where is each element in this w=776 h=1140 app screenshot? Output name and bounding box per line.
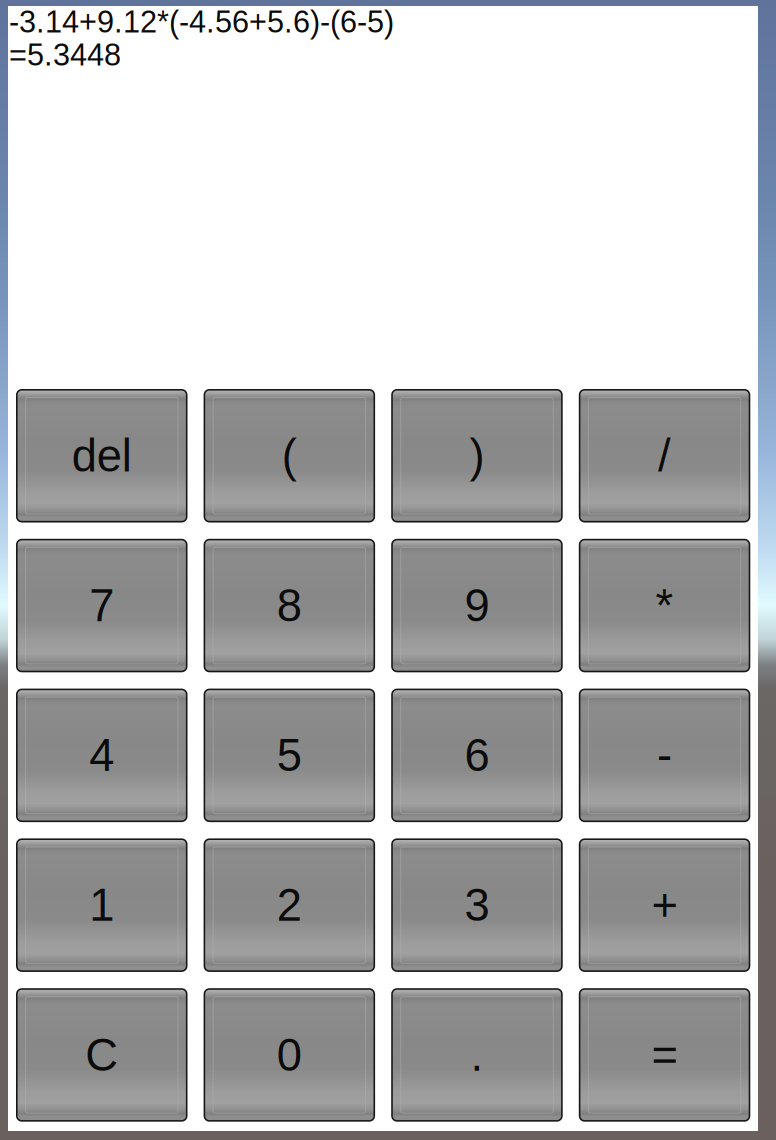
staticText: ) xyxy=(469,430,484,481)
staticText: 5 xyxy=(277,730,302,781)
button[interactable]: ) xyxy=(391,389,563,522)
button[interactable]: 4 xyxy=(16,689,187,822)
staticText: - xyxy=(657,730,672,781)
staticText: . xyxy=(470,1030,483,1080)
staticText: C xyxy=(85,1030,118,1080)
button[interactable]: 3 xyxy=(391,838,563,972)
button[interactable]: del xyxy=(16,389,187,522)
staticText: =5.3448 xyxy=(9,38,121,72)
button[interactable]: 9 xyxy=(391,539,563,672)
button[interactable]: 6 xyxy=(391,689,563,822)
button[interactable]: 8 xyxy=(204,539,375,672)
button[interactable]: 7 xyxy=(16,539,187,672)
staticText: 9 xyxy=(464,580,489,631)
button[interactable]: = xyxy=(579,988,750,1122)
staticText: ( xyxy=(282,430,297,481)
button[interactable]: + xyxy=(579,838,750,972)
button[interactable]: 1 xyxy=(16,838,187,972)
staticText: / xyxy=(658,430,671,481)
staticText: 6 xyxy=(464,730,489,781)
button[interactable]: . xyxy=(391,988,563,1122)
staticText: * xyxy=(655,580,673,631)
button[interactable]: ( xyxy=(204,389,375,522)
staticText: + xyxy=(651,880,677,930)
button[interactable]: 2 xyxy=(204,838,375,972)
button[interactable]: C xyxy=(16,988,187,1122)
staticText: 0 xyxy=(277,1030,302,1080)
staticText: del xyxy=(72,430,132,481)
staticText: 8 xyxy=(277,580,302,631)
staticText: 7 xyxy=(89,580,114,631)
staticText: 2 xyxy=(277,880,302,930)
button[interactable]: 5 xyxy=(204,689,375,822)
staticText: 1 xyxy=(89,880,114,930)
staticText: 4 xyxy=(89,730,114,781)
button[interactable]: * xyxy=(579,539,750,672)
button[interactable]: - xyxy=(579,689,750,822)
staticText: = xyxy=(651,1030,677,1080)
staticText: 3 xyxy=(464,880,489,930)
button[interactable]: 0 xyxy=(204,988,375,1122)
button[interactable]: / xyxy=(579,389,750,522)
staticText: -3.14+9.12*(-4.56+5.6)-(6-5) xyxy=(9,5,394,39)
